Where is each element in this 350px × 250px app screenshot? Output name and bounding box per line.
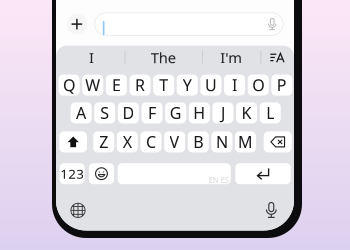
button[interactable]: C	[140, 131, 161, 152]
button[interactable]: G	[165, 102, 186, 123]
button[interactable]: B	[188, 131, 209, 152]
staticText: M	[238, 131, 253, 152]
staticText: H	[193, 102, 205, 123]
button[interactable]: I	[59, 47, 125, 69]
button[interactable]: Dictate	[268, 18, 276, 30]
staticText: Q	[63, 74, 75, 96]
staticText: J	[221, 102, 225, 123]
staticText: L	[266, 102, 274, 123]
staticText: I	[89, 48, 94, 67]
button[interactable]: M	[235, 131, 256, 152]
button[interactable]: N	[211, 131, 232, 152]
button[interactable]: Z	[93, 131, 114, 152]
button[interactable]: P	[271, 75, 292, 96]
button[interactable]: J	[212, 102, 233, 123]
button[interactable]: A	[71, 102, 92, 123]
button[interactable]: Message	[95, 13, 283, 35]
button[interactable]: I'm	[202, 47, 260, 69]
button[interactable]: E	[106, 75, 127, 96]
staticText: S	[100, 102, 109, 123]
button[interactable]: T	[153, 75, 174, 96]
button[interactable]: Dictation	[266, 202, 277, 218]
button[interactable]: Next keyboard	[70, 203, 86, 218]
button[interactable]: X	[117, 131, 138, 152]
button[interactable]: Text formatting	[260, 47, 294, 69]
staticText: V	[170, 131, 180, 152]
staticText: T	[159, 74, 168, 96]
button[interactable]: I	[224, 75, 245, 96]
button[interactable]: Delete	[264, 131, 292, 152]
button[interactable]: R	[129, 75, 150, 96]
button[interactable]: Q	[59, 75, 80, 96]
staticText: W	[85, 74, 100, 96]
button[interactable]: H	[189, 102, 210, 123]
button[interactable]: U	[200, 75, 221, 96]
button[interactable]: K	[236, 102, 257, 123]
staticText: The	[151, 48, 176, 67]
staticText: Y	[183, 74, 192, 96]
staticText: E	[112, 74, 121, 96]
button[interactable]: D	[118, 102, 139, 123]
button[interactable]: Shift	[59, 131, 87, 152]
staticText: D	[122, 102, 134, 123]
staticText: I'm	[220, 48, 242, 67]
button[interactable]: Add attachment	[67, 14, 87, 34]
staticText: N	[216, 131, 228, 152]
staticText: I	[232, 74, 237, 96]
staticText: P	[277, 74, 287, 96]
staticText: Z	[99, 131, 108, 152]
button[interactable]: F	[141, 102, 162, 123]
button[interactable]: W	[82, 75, 103, 96]
staticText: G	[170, 102, 182, 123]
staticText: O	[252, 74, 264, 96]
button[interactable]: O	[248, 75, 269, 96]
button[interactable]: 123	[60, 163, 85, 184]
staticText: K	[242, 102, 252, 123]
staticText: X	[123, 131, 132, 152]
staticText: EN ES	[208, 174, 228, 185]
button[interactable]: The	[125, 47, 202, 69]
staticText: 123	[60, 165, 84, 182]
staticText: F	[148, 102, 156, 123]
button[interactable]: V	[164, 131, 185, 152]
staticText: A	[76, 102, 86, 123]
staticText: C	[146, 131, 156, 152]
button[interactable]: L	[260, 102, 281, 123]
button[interactable]: Y	[177, 75, 198, 96]
button[interactable]: Emoji	[89, 163, 114, 184]
staticText: U	[205, 74, 217, 96]
staticText: R	[135, 74, 145, 96]
button[interactable]: S	[94, 102, 115, 123]
button[interactable]: Space	[118, 163, 231, 184]
staticText: B	[193, 131, 203, 152]
button[interactable]: Return	[235, 163, 291, 184]
